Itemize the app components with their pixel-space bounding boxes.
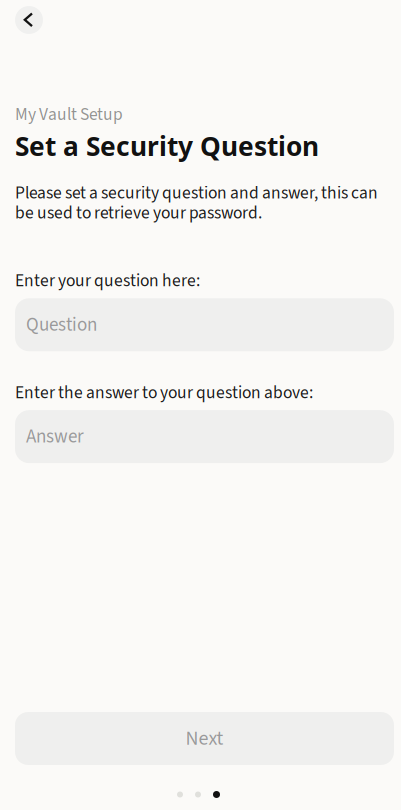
staticText: Enter the answer to your question above: [15, 380, 313, 405]
button[interactable]: Answer [15, 410, 394, 463]
staticText: Answer [26, 423, 84, 450]
staticText: My Vault Setup [15, 102, 123, 127]
staticText: Set a Security Question [15, 128, 319, 164]
staticText: Next [185, 724, 223, 753]
button[interactable]: Back [15, 6, 43, 34]
button[interactable]: Next [15, 712, 394, 765]
staticText: Enter your question here: [15, 268, 200, 293]
button[interactable]: Question [15, 298, 394, 351]
staticText: Please set a security question and answe… [15, 181, 378, 225]
staticText: Question [26, 311, 97, 338]
